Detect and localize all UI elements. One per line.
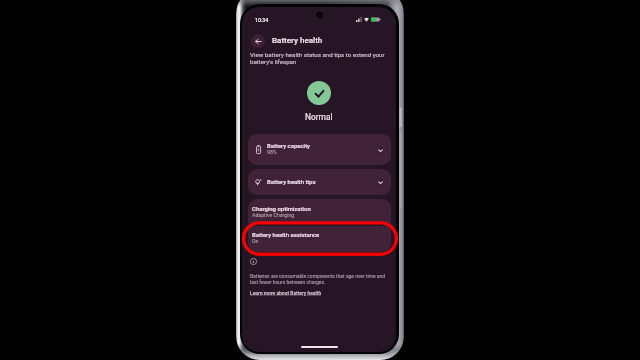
button[interactable]: Learn more about Battery health (250, 290, 322, 296)
staticText: Battery health assistance (252, 231, 320, 238)
staticText: View battery health status and tips to e… (250, 51, 391, 65)
button[interactable]: Battery health assistance (248, 226, 391, 252)
staticText: Battery health (272, 36, 323, 45)
button[interactable]: Battery health tips (248, 169, 391, 195)
staticText: Learn more about Battery health (250, 290, 322, 296)
staticText: Battery capacity (267, 142, 310, 149)
button[interactable]: Charging optimization (248, 199, 391, 224)
staticText: Adaptive Charging (252, 212, 295, 218)
staticText: On (252, 238, 259, 244)
staticText: Charging optimization (252, 205, 311, 212)
staticText: 98% (267, 149, 277, 155)
button[interactable]: Back (251, 34, 265, 48)
staticText: Batteries are consumable components that… (250, 273, 390, 286)
button[interactable]: Battery capacity (248, 134, 391, 165)
staticText: Normal (305, 112, 333, 122)
staticText: 10:34 (255, 17, 269, 23)
staticText: Battery health tips (267, 178, 316, 185)
